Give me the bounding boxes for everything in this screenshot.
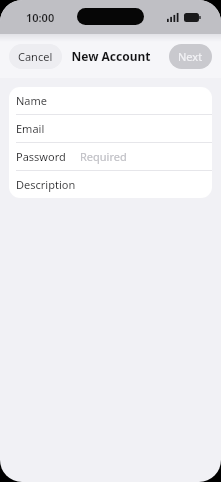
staticText: Description [16, 177, 76, 192]
staticText: New Account [71, 48, 151, 64]
staticText: Email [16, 121, 45, 136]
staticText: Next [178, 49, 203, 64]
button[interactable]: Cancel [9, 44, 62, 69]
button[interactable]: Name [9, 87, 212, 114]
button[interactable]: Next [169, 44, 212, 69]
button[interactable]: Email [9, 115, 212, 142]
staticText: Name [16, 93, 48, 108]
button[interactable]: Password [9, 143, 212, 170]
staticText: Required [80, 149, 127, 164]
staticText: Cancel [18, 49, 53, 64]
button[interactable]: Description [9, 171, 212, 198]
staticText: 10:00 [26, 10, 55, 25]
staticText: Password [16, 149, 66, 164]
